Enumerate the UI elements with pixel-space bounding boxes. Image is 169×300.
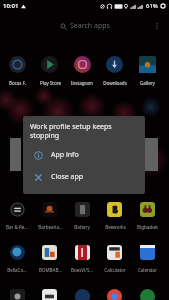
button[interactable]: Barbearia... xyxy=(34,201,66,228)
button[interactable]: Play Store xyxy=(34,55,66,84)
button[interactable]: Downloads xyxy=(99,55,131,84)
staticText: Instagram xyxy=(71,80,93,86)
staticText: Barbearia... xyxy=(38,224,63,230)
button[interactable] xyxy=(34,288,66,300)
button[interactable]: Instagram xyxy=(66,55,98,84)
button[interactable] xyxy=(66,288,98,300)
staticText: Search apps xyxy=(70,21,110,31)
staticText: Work profile setup keeps stopping xyxy=(30,122,118,140)
staticText: BellaCo... xyxy=(7,267,27,273)
button[interactable]: BoesVi/S... xyxy=(66,244,98,271)
staticText: BOMBAB... xyxy=(39,267,62,273)
staticText: 10:01 xyxy=(3,2,19,10)
staticText: Bocas F. xyxy=(9,80,26,86)
staticText: Calculator xyxy=(104,267,126,273)
button[interactable]: BellaCo... xyxy=(1,244,33,271)
staticText: Downloads xyxy=(103,80,127,86)
staticText: BoesVi/S... xyxy=(71,267,93,273)
button[interactable]: Search apps xyxy=(60,21,110,31)
button[interactable]: Bigbasket xyxy=(131,201,163,228)
staticText: Bar & Re... xyxy=(6,224,28,230)
staticText: Battery xyxy=(74,224,90,230)
button[interactable]: Bocas F. xyxy=(1,55,33,84)
staticText: Calendar xyxy=(138,267,157,273)
staticText: Close app xyxy=(51,172,84,182)
staticText: Beeworks xyxy=(105,224,126,230)
button[interactable]: Beeworks xyxy=(99,201,131,228)
staticText: 61% xyxy=(146,2,158,10)
button[interactable]: Close app xyxy=(23,166,145,188)
staticText: Bigbasket xyxy=(137,224,158,230)
staticText: App info xyxy=(51,150,79,160)
button[interactable]: More options xyxy=(152,21,162,31)
button[interactable]: Gallery xyxy=(131,55,163,84)
button[interactable]: App info xyxy=(23,144,145,166)
staticText: Play Store xyxy=(40,80,61,86)
button[interactable] xyxy=(1,288,33,300)
button[interactable]: BOMBAB... xyxy=(34,244,66,271)
button[interactable]: Bar & Re... xyxy=(1,201,33,228)
staticText: Gallery xyxy=(140,80,155,86)
button[interactable] xyxy=(131,288,163,300)
button[interactable] xyxy=(99,288,131,300)
button[interactable]: Calculator xyxy=(99,244,131,271)
button[interactable]: Battery xyxy=(66,201,98,228)
button[interactable]: Calendar xyxy=(131,244,163,271)
